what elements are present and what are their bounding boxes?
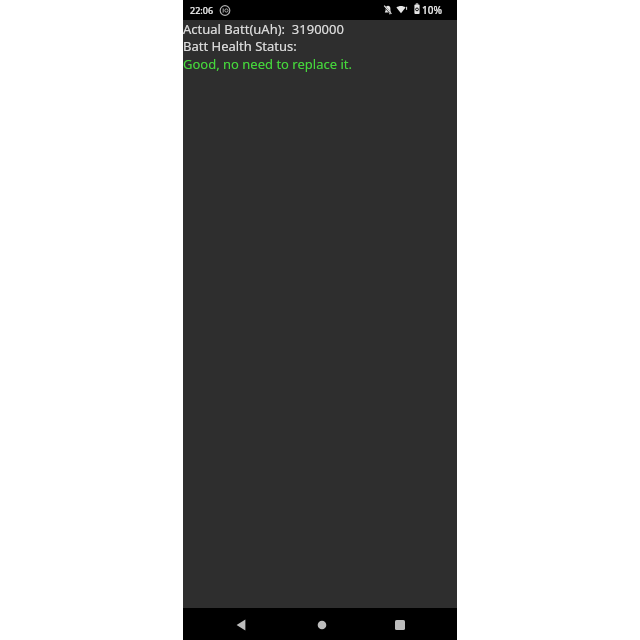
- staticText: Actual Batt(uAh): 3190000: [183, 20, 344, 38]
- button[interactable]: [301, 612, 343, 638]
- staticText: Batt Health Status:: [183, 37, 297, 55]
- staticText: 22:06: [190, 4, 214, 16]
- staticText: 10%: [422, 3, 442, 17]
- button[interactable]: [221, 612, 263, 638]
- button[interactable]: [379, 612, 421, 638]
- staticText: Good, no need to replace it.: [183, 55, 352, 73]
